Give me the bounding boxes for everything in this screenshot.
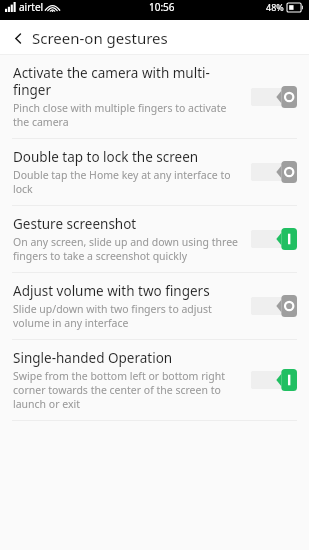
button[interactable]: Off: [251, 295, 297, 317]
staticText: Swipe from the bottom left or bottom rig…: [13, 369, 241, 411]
staticText: Double tap the Home key at any interface…: [13, 168, 241, 196]
staticText: On any screen, slide up and down using t…: [13, 235, 241, 263]
button[interactable]: On: [251, 228, 297, 250]
staticText: Pinch close with multiple fingers to act…: [13, 101, 241, 129]
staticText: Gesture screenshot: [13, 215, 137, 233]
staticText: airtel: [19, 0, 44, 14]
button[interactable]: Off: [251, 161, 297, 183]
button[interactable]: On: [251, 369, 297, 391]
staticText: Double tap to lock the screen: [13, 148, 199, 166]
button[interactable]: Activate the camera with multi-finger: [0, 55, 309, 138]
staticText: 10:56: [149, 0, 175, 14]
button[interactable]: Adjust volume with two fingers: [0, 273, 309, 339]
staticText: 48%: [266, 1, 284, 13]
button[interactable]: Back: [8, 28, 28, 48]
staticText: Slide up/down with two fingers to adjust…: [13, 302, 241, 330]
staticText: Adjust volume with two fingers: [13, 282, 210, 300]
button[interactable]: Gesture screenshot: [0, 206, 309, 272]
button[interactable]: Off: [251, 86, 297, 108]
staticText: Single-handed Operation: [13, 349, 173, 367]
button[interactable]: Double tap to lock the screen: [0, 139, 309, 205]
button[interactable]: Single-handed Operation: [0, 340, 309, 420]
staticText: Screen-on gestures: [32, 28, 168, 48]
staticText: Activate the camera with multi-finger: [13, 64, 241, 99]
